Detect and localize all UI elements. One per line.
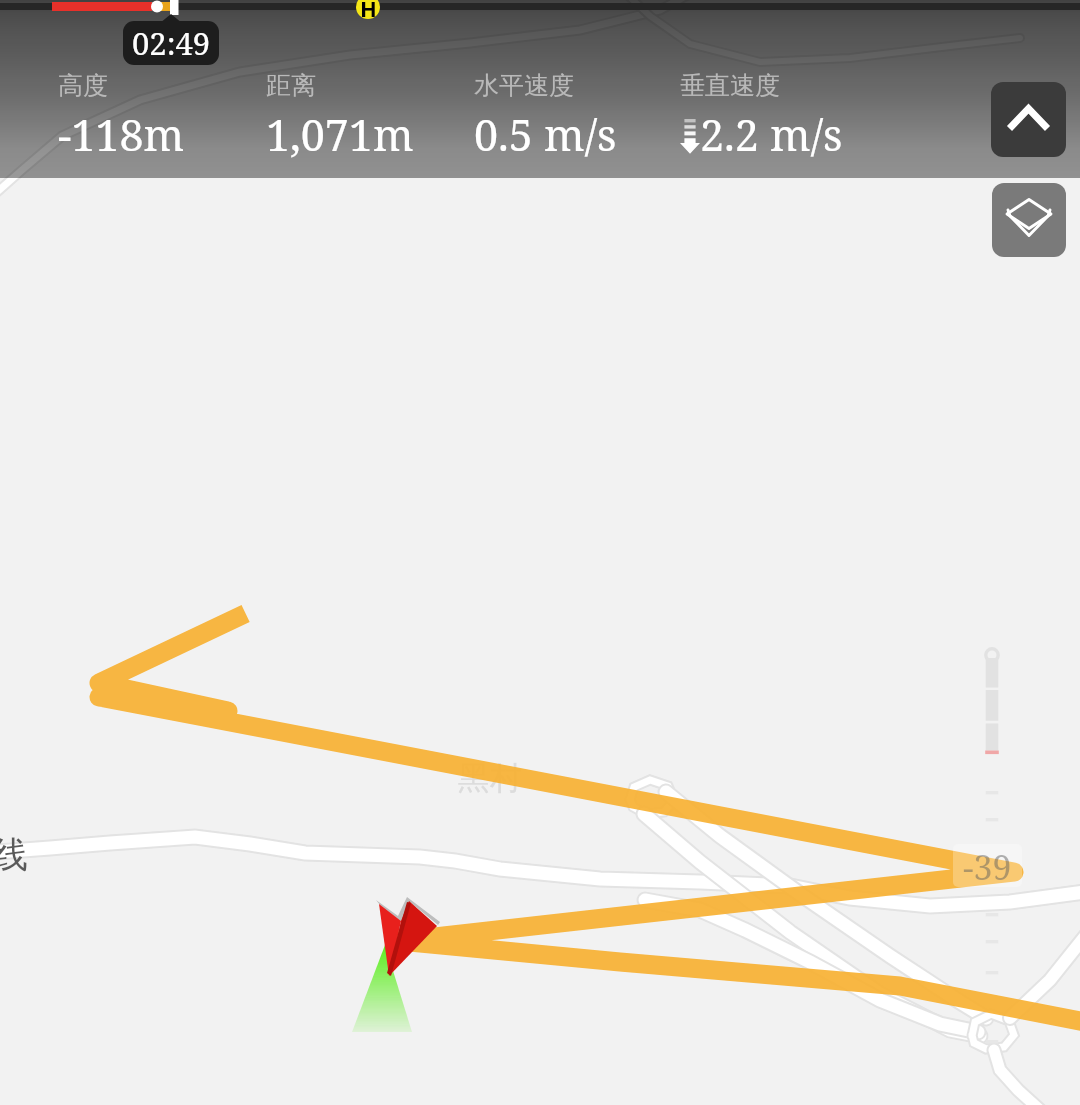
staticText: 黑村 — [458, 758, 522, 798]
staticText: 距离 — [266, 70, 316, 101]
staticText: 高度 — [58, 70, 108, 101]
staticText: H — [360, 0, 377, 23]
button[interactable]: Collapse panel — [991, 82, 1066, 157]
staticText: 2.2 m/s — [700, 105, 843, 164]
staticText: 0.5 m/s — [474, 105, 617, 164]
staticText: -39 — [963, 844, 1012, 887]
staticText: 1,071m — [266, 105, 414, 164]
staticText: 水平速度 — [474, 70, 574, 101]
button[interactable]: Map layers — [992, 183, 1066, 257]
staticText: 02:49 — [132, 22, 211, 64]
staticText: -118m — [58, 105, 185, 164]
staticText: 线 — [0, 832, 28, 877]
staticText: 垂直速度 — [680, 70, 780, 101]
